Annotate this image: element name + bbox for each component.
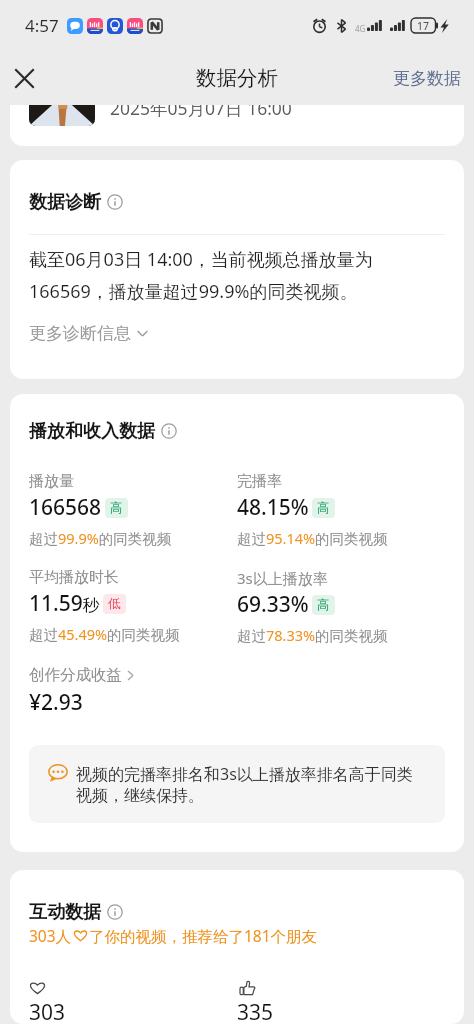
staticText: 完播率 [237,472,282,491]
staticText: 2025年05月07日 16:00 [110,105,292,120]
staticText: 高 [317,597,330,613]
staticText: 17 [417,19,430,33]
staticText: 创作分成收益 [29,665,122,685]
staticText: 了你的视频，推荐给了181个朋友 [89,925,318,946]
staticText: 更多数据 [393,68,461,89]
staticText: 4G [355,23,366,34]
button[interactable]: 303 [29,977,237,1024]
staticText: 3s以上播放率 [237,568,328,588]
staticText: 超过45.49%的同类视频 [29,624,180,644]
staticText: 更多诊断信息 [29,323,131,344]
button[interactable]: 更多数据 [393,68,461,89]
staticText: 数据分析 [196,65,278,91]
staticText: 高 [317,500,330,516]
button[interactable]: 创作分成收益 [29,665,134,685]
staticText: 303人 [29,925,72,946]
staticText: 低 [108,596,121,612]
staticText: 视频的完播率排名和3s以上播放率排名高于同类 视频，继续保持。 [76,763,413,805]
staticText: 高 [110,500,123,516]
staticText: 截至06月03日 14:00，当前视频总播放量为 166569，播放量超过99.… [29,247,373,303]
staticText: 播放和收入数据 [29,420,155,443]
staticText: 平均播放时长 [29,568,119,587]
staticText: 303 [29,998,66,1024]
staticText: ¥2.93 [29,688,83,717]
staticText: 11.59秒 [29,589,100,618]
button[interactable]: 335 [237,977,445,1024]
staticText: 超过99.9%的同类视频 [29,528,172,548]
staticText: 超过95.14%的同类视频 [237,528,388,548]
button[interactable]: Close [0,54,48,102]
staticText: 4:57 [25,14,59,37]
staticText: 播放量 [29,472,74,491]
staticText: 数据诊断 [29,191,101,214]
button[interactable]: 2025年05月07日 16:00 [10,105,464,146]
staticText: 69.33% [237,590,309,619]
staticText: 335 [237,998,274,1024]
staticText: 超过78.33%的同类视频 [237,625,388,645]
button[interactable]: 更多诊断信息 [29,321,148,346]
staticText: 166568 [29,493,102,522]
staticText: 48.15% [237,493,309,522]
staticText: 互动数据 [29,901,101,924]
